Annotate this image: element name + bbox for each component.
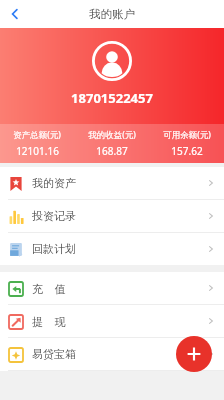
staticText: 157.62	[171, 144, 203, 158]
button[interactable]: 我的资产	[0, 167, 224, 199]
staticText: 18701522457	[71, 89, 153, 107]
staticText: 易贷宝箱	[32, 347, 76, 361]
staticText: 投资记录	[32, 209, 76, 223]
button[interactable]: 易贷宝箱	[0, 338, 224, 370]
button[interactable]: 回款计划	[0, 233, 224, 265]
button[interactable]: Back	[0, 0, 30, 28]
staticText: 可用余额(元)	[163, 129, 211, 141]
button[interactable]: 投资记录	[0, 200, 224, 232]
staticText: 提 现	[32, 314, 66, 329]
staticText: 168.87	[96, 144, 128, 158]
staticText: 我的收益(元)	[88, 129, 136, 141]
staticText: 回款计划	[32, 242, 76, 256]
staticText: 我的账户	[89, 7, 135, 21]
button[interactable]: 提 现	[0, 305, 224, 337]
staticText: 资产总额(元)	[13, 129, 61, 141]
staticText: 我的资产	[32, 176, 76, 190]
staticText: 充 值	[32, 281, 66, 296]
button[interactable]: Add	[176, 336, 212, 372]
staticText: 12101.16	[16, 144, 59, 158]
button[interactable]: 充 值	[0, 272, 224, 304]
